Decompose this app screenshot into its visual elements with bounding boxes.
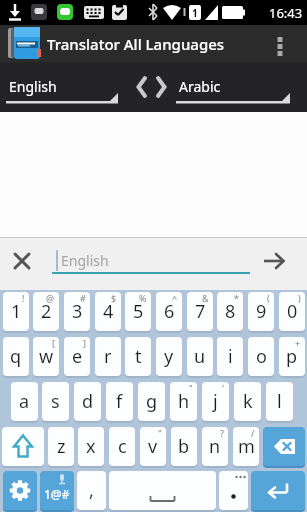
button[interactable]: English — [6, 62, 118, 112]
staticText: u — [194, 344, 206, 369]
staticText: " — [158, 427, 162, 439]
button[interactable]: 9 — [248, 292, 274, 331]
button[interactable]: s — [42, 382, 69, 421]
button[interactable]: 1 — [3, 292, 29, 331]
staticText: 0 — [287, 299, 298, 324]
staticText: ^ — [172, 292, 178, 304]
button[interactable]: t — [125, 337, 151, 376]
button[interactable]: f — [106, 382, 133, 421]
button[interactable]: l — [266, 382, 293, 421]
staticText: d — [82, 389, 94, 414]
button[interactable] — [255, 247, 295, 279]
staticText: 4 — [103, 299, 114, 324]
staticText: / — [251, 427, 255, 439]
staticText: i — [228, 344, 233, 369]
button[interactable]: k — [234, 382, 261, 421]
staticText: 9 — [256, 299, 267, 324]
button[interactable]: v — [140, 427, 166, 466]
staticText: p — [286, 344, 298, 369]
button[interactable]: p — [279, 337, 305, 376]
staticText: Arabic — [179, 77, 221, 96]
button[interactable]: n — [202, 427, 228, 466]
button[interactable] — [130, 70, 174, 104]
staticText: " — [189, 382, 193, 394]
button[interactable]: 1@# — [40, 471, 74, 510]
button[interactable]: c — [109, 427, 135, 466]
button[interactable]: r — [95, 337, 121, 376]
staticText: ! — [22, 292, 25, 304]
staticText: # — [80, 292, 86, 304]
staticText: q — [10, 344, 22, 369]
staticText: r — [104, 344, 112, 369]
button[interactable]: y — [156, 337, 182, 376]
staticText: h — [178, 389, 190, 414]
staticText: % — [139, 292, 147, 304]
button[interactable]: 3 — [64, 292, 90, 331]
staticText: 5 — [133, 299, 144, 324]
staticText: English — [9, 77, 57, 96]
staticText: @ — [46, 292, 55, 304]
button[interactable]: 5 — [125, 292, 151, 331]
button[interactable]: a — [11, 382, 38, 421]
button[interactable]: x — [78, 427, 104, 466]
staticText: $ — [111, 292, 117, 304]
button[interactable]: Arabic — [176, 62, 290, 112]
button[interactable]: w — [33, 337, 59, 376]
button[interactable] — [3, 471, 37, 510]
button[interactable]: 0 — [279, 292, 305, 331]
staticText: ? — [220, 427, 224, 439]
staticText: k — [243, 389, 253, 414]
staticText: g — [146, 389, 158, 414]
button[interactable] — [109, 471, 216, 510]
staticText: ' — [222, 382, 225, 394]
staticText: n — [209, 434, 221, 459]
staticText: 3 — [72, 299, 83, 324]
staticText: English — [61, 251, 109, 270]
button[interactable] — [219, 471, 248, 510]
button[interactable]: b — [171, 427, 197, 466]
staticText: j — [213, 389, 218, 414]
button[interactable]: e — [64, 337, 90, 376]
button[interactable]: m — [233, 427, 259, 466]
button[interactable] — [5, 247, 39, 279]
staticText: 6 — [164, 299, 175, 324]
button[interactable]: g — [138, 382, 165, 421]
staticText: x — [86, 434, 96, 459]
button[interactable] — [263, 427, 305, 466]
staticText: m — [238, 434, 255, 459]
staticText: y — [164, 344, 174, 369]
button[interactable] — [251, 471, 305, 510]
button[interactable]: z — [48, 427, 74, 466]
staticText: 8 — [225, 299, 236, 324]
staticText: 7 — [195, 299, 206, 324]
button[interactable]: 6 — [156, 292, 182, 331]
button[interactable]: 8 — [217, 292, 243, 331]
staticText: ( — [267, 292, 270, 304]
button[interactable] — [266, 25, 294, 62]
button[interactable]: q — [3, 337, 29, 376]
staticText: + — [295, 337, 301, 349]
button[interactable] — [2, 427, 44, 466]
staticText: b — [178, 434, 190, 459]
button[interactable]: 4 — [95, 292, 121, 331]
staticText: t — [135, 344, 142, 369]
button[interactable]: h — [170, 382, 197, 421]
button[interactable]: 2 — [33, 292, 59, 331]
button[interactable]: 7 — [187, 292, 213, 331]
staticText: 16:43 — [269, 4, 303, 22]
button[interactable]: j — [202, 382, 229, 421]
staticText: s — [51, 389, 60, 414]
staticText: & — [202, 292, 209, 304]
button[interactable]: d — [74, 382, 101, 421]
button[interactable]: u — [187, 337, 213, 376]
button[interactable]: i — [217, 337, 243, 376]
staticText: w — [39, 344, 54, 369]
staticText: 1@# — [44, 486, 70, 502]
staticText: a — [19, 389, 30, 414]
button[interactable]: , — [77, 471, 106, 510]
button[interactable]: o — [248, 337, 274, 376]
staticText: 1 — [11, 299, 22, 324]
staticText: 2 — [41, 299, 52, 324]
staticText: v — [148, 434, 158, 459]
staticText: ] — [83, 337, 86, 349]
